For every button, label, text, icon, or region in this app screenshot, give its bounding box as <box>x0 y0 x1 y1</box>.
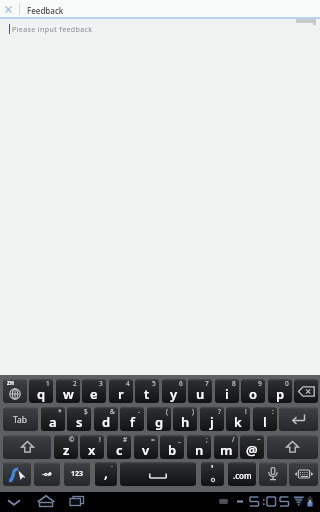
staticText: a <box>49 413 57 431</box>
staticText: 9 <box>258 379 262 388</box>
staticText: # <box>123 435 128 444</box>
staticText: ! <box>99 435 101 444</box>
button[interactable] <box>64 492 92 512</box>
button[interactable]: u <box>188 379 212 403</box>
staticText: © <box>69 435 75 444</box>
button[interactable]: a <box>41 407 65 431</box>
staticText: q <box>37 385 46 403</box>
staticText: Please input feedback <box>12 25 93 35</box>
button[interactable]: e <box>82 379 106 403</box>
button[interactable]: o <box>241 379 265 403</box>
staticText: b <box>168 441 177 459</box>
staticText: u <box>196 385 205 403</box>
button[interactable]: s <box>67 407 91 431</box>
staticText: _ <box>178 435 181 444</box>
button[interactable]: h <box>173 407 197 431</box>
button[interactable]: n <box>187 435 211 459</box>
staticText: Feedback <box>27 5 64 16</box>
staticText: t <box>144 385 150 403</box>
staticText: , <box>104 463 108 482</box>
staticText: 6 <box>179 379 183 388</box>
staticText: l <box>263 413 267 431</box>
button[interactable] <box>0 492 28 512</box>
staticText: * <box>58 407 62 416</box>
staticText: v <box>142 441 150 459</box>
staticText: j <box>210 413 214 431</box>
button[interactable]: ' <box>201 462 224 486</box>
staticText: w <box>63 385 74 403</box>
staticText: z <box>63 441 70 459</box>
button[interactable]: @ <box>240 435 264 459</box>
button[interactable]: Tab <box>3 407 38 431</box>
button[interactable]: y <box>162 379 186 403</box>
staticText: r <box>118 385 124 403</box>
staticText: 3 <box>99 379 103 388</box>
staticText: 0 <box>285 379 289 388</box>
button[interactable]: t <box>135 379 159 403</box>
button[interactable] <box>120 462 196 486</box>
staticText: ; <box>206 435 208 444</box>
button[interactable]: q <box>29 379 53 403</box>
button[interactable]: d <box>94 407 118 431</box>
button[interactable] <box>0 0 18 17</box>
staticText: @ <box>246 441 258 459</box>
staticText: / <box>232 435 235 444</box>
staticText: Tab <box>13 414 28 426</box>
staticText: s <box>76 413 83 431</box>
button[interactable] <box>267 435 318 459</box>
button[interactable] <box>294 379 318 403</box>
staticText: 4 <box>126 379 130 388</box>
button[interactable]: b <box>160 435 184 459</box>
button[interactable]: v <box>134 435 158 459</box>
button[interactable]: c <box>107 435 131 459</box>
button[interactable]: -o# <box>34 462 60 486</box>
button[interactable]: k <box>226 407 250 431</box>
staticText: : <box>272 407 274 416</box>
button[interactable]: i <box>215 379 239 403</box>
button[interactable] <box>32 492 60 512</box>
button[interactable]: .com <box>228 462 256 486</box>
button[interactable]: , <box>95 462 117 486</box>
staticText: 1 <box>46 379 50 388</box>
button[interactable]: m <box>214 435 238 459</box>
staticText: ! <box>245 407 247 416</box>
button[interactable] <box>3 435 51 459</box>
staticText: = <box>151 435 155 444</box>
staticText: m <box>220 441 233 459</box>
staticText: o <box>249 385 258 403</box>
button[interactable]: w <box>56 379 80 403</box>
staticText: k <box>234 413 242 431</box>
staticText: & <box>110 407 115 416</box>
staticText: ZH <box>7 380 14 387</box>
button[interactable]: g <box>147 407 171 431</box>
staticText: c <box>116 441 123 459</box>
staticText: 7 <box>205 379 209 388</box>
staticText: n <box>195 441 204 459</box>
staticText: x <box>88 441 96 459</box>
button[interactable] <box>289 462 318 486</box>
staticText: 8 <box>232 379 236 388</box>
button[interactable]: r <box>109 379 133 403</box>
button[interactable]: x <box>80 435 104 459</box>
staticText: - <box>111 462 113 470</box>
button[interactable]: p <box>268 379 292 403</box>
staticText: e <box>90 385 98 403</box>
staticText: ' <box>211 462 214 476</box>
button[interactable]: z <box>54 435 78 459</box>
button[interactable]: l <box>253 407 277 431</box>
button[interactable] <box>279 407 318 431</box>
staticText: ( <box>166 407 168 416</box>
button[interactable]: j <box>200 407 224 431</box>
button[interactable]: f <box>120 407 144 431</box>
staticText: y <box>170 385 178 403</box>
staticText: ? <box>218 407 221 416</box>
staticText: -o# <box>42 470 52 478</box>
button[interactable]: 123 <box>64 462 90 486</box>
button[interactable]: ZH <box>3 379 27 403</box>
staticText: d <box>102 413 111 431</box>
button[interactable] <box>3 462 31 486</box>
button[interactable] <box>259 462 287 486</box>
button[interactable]: Please input feedback <box>0 19 320 375</box>
staticText: $ <box>84 407 88 416</box>
staticText: 2 <box>73 379 77 388</box>
